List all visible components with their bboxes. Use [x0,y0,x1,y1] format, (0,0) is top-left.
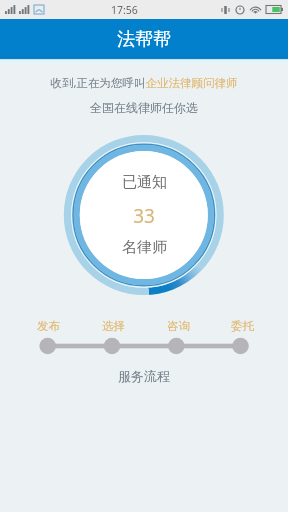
staticText: 咨询 [167,319,190,333]
staticText: 全国在线律师任你选 [0,100,288,115]
button[interactable]: 咨询 [160,319,196,333]
staticText: 17:56 [111,3,138,17]
staticText: 发布 [37,319,60,333]
button[interactable]: 发布 [30,319,66,333]
staticText: 法帮帮 [117,28,171,51]
button[interactable]: 选择 [95,319,131,333]
staticText: 选择 [102,319,125,333]
staticText: 委托 [231,319,254,333]
staticText: 名律师 [122,238,167,257]
staticText: 收到,正在为您呼叫企业法律顾问律师 [0,75,288,91]
button[interactable]: 委托 [224,319,260,333]
button[interactable]: 法帮帮 [0,19,288,59]
staticText: 已通知 [122,173,167,192]
staticText: 33 [133,203,155,229]
staticText: 服务流程 [0,368,288,384]
